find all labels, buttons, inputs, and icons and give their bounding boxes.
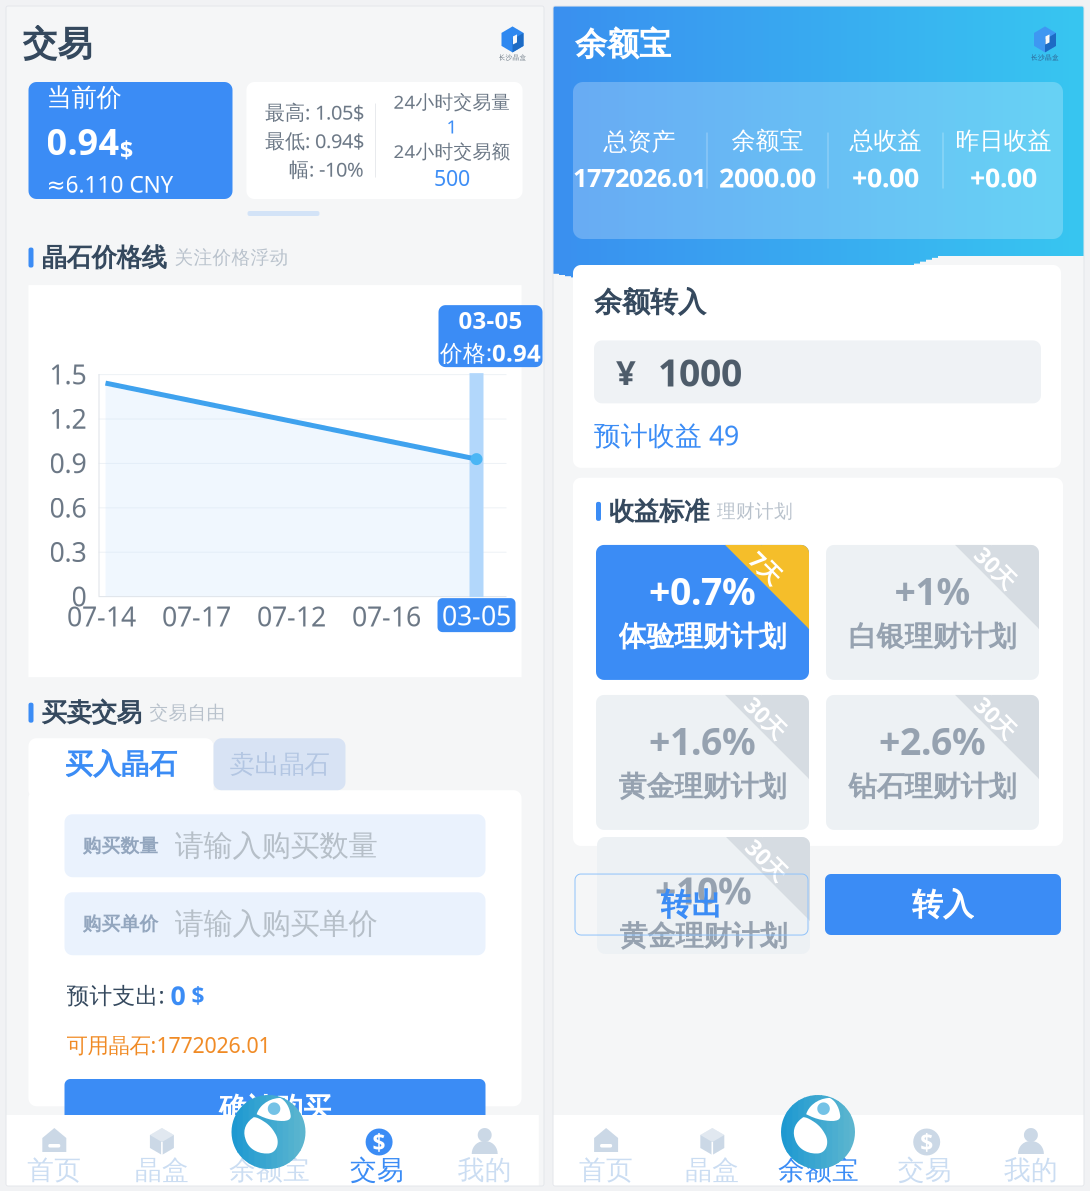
staticText: 白银理财计划 [848,619,1016,654]
staticText: 30天 [741,703,790,733]
staticText: 24小时交易量 [393,89,510,114]
button[interactable]: 余额宝 [216,1115,323,1186]
staticText: 07-17 [162,598,231,634]
staticText: 卖出晶石 [229,749,329,780]
button[interactable]: 我的 [431,1115,538,1186]
staticText: +0.00 [852,159,919,195]
button[interactable]: 我的 [978,1115,1084,1186]
staticText: 转入 [912,886,974,923]
staticText: 首页 [27,1154,81,1186]
button[interactable]: 余额宝 [781,1095,855,1169]
staticText: 长沙晶盒 [1031,53,1059,62]
staticText: 30天 [971,553,1020,583]
staticText: 首页 [579,1154,633,1186]
staticText: 最低: 0.94$ [265,127,364,154]
button[interactable]: 7天 [596,545,809,680]
button[interactable]: 晶盒 [659,1115,765,1186]
staticText: 购买单价 [82,912,158,935]
staticText: 0.94 [46,117,119,165]
button[interactable]: 30天 [826,545,1039,680]
staticText: ¥ [616,349,636,395]
staticText: 余额宝 [229,1154,310,1186]
staticText: 理财计划 [717,500,793,523]
staticText: 请输入购买单价 [174,906,377,942]
staticText: +10% [655,865,752,915]
staticText: ≈6.110 CNY [46,169,173,199]
staticText: 我的 [458,1154,512,1186]
staticText: +2.6% [879,716,986,765]
staticText: 体验理财计划 [618,619,786,654]
staticText: 30天 [742,845,791,875]
button[interactable]: 首页 [0,1115,108,1186]
staticText: 总资产 [603,127,675,156]
button[interactable]: 晶盒 [108,1115,216,1186]
staticText: 0.94 [492,337,541,368]
staticText: 交易自由 [149,701,225,724]
button[interactable]: $ [323,1115,431,1186]
staticText: 价格: [440,337,492,368]
staticText: 收益标准 [609,496,709,527]
button[interactable]: $ [872,1115,978,1186]
staticText: 买卖交易 [41,697,141,728]
staticText: 1.2 [49,401,86,436]
button[interactable]: 30天 [597,837,810,954]
staticText: 转出 [660,886,722,923]
staticText: $ [920,1127,933,1157]
staticText: 交易 [22,23,92,65]
staticText: 500 [434,163,470,192]
staticText: 0.6 [49,490,86,525]
staticText: 请输入购买数量 [174,828,377,864]
staticText: 最高: 1.05$ [265,99,364,125]
button[interactable]: 首页 [553,1115,659,1186]
staticText: 黄金理财计划 [619,919,787,953]
staticText: 1772026.01 [573,160,706,194]
staticText: 24小时交易额 [393,139,510,163]
button[interactable]: 转入 [825,874,1061,935]
staticText: 03-05 [458,304,522,336]
staticText: 余额宝 [575,24,671,64]
staticText: 2000.00 [719,159,816,195]
staticText: 晶盒 [685,1154,739,1186]
button[interactable]: 余额宝 [765,1115,872,1186]
button[interactable]: 买入晶石 [28,738,213,790]
button[interactable]: 转出 [575,874,808,935]
staticText: 当前价 [46,82,121,113]
staticText: 确认购买 [219,1091,331,1125]
staticText: $ [373,1127,386,1157]
staticText: 30天 [971,703,1020,733]
staticText: $ [119,133,133,165]
staticText: 1000 [658,347,742,397]
staticText: 预计收益 49 [594,417,739,453]
staticText: 购买数量 [82,834,158,857]
staticText: 0 [71,578,86,614]
staticText: 昨日收益 [955,126,1051,156]
button[interactable]: 确认购买 [64,1079,485,1137]
button[interactable]: 卖出晶石 [213,738,345,790]
staticText: 余额转入 [594,285,706,319]
staticText: 预计支出: [66,980,170,1010]
staticText: 07-12 [257,598,326,634]
staticText: 我的 [1004,1154,1058,1186]
staticText: 幅: -10% [289,156,364,182]
staticText: 晶盒 [135,1154,189,1186]
staticText: 7天 [748,553,784,583]
staticText: +0.7% [649,566,756,615]
staticText: 黄金理财计划 [618,769,786,804]
button[interactable]: 余额宝 [231,1095,305,1169]
button[interactable]: 30天 [826,695,1039,830]
staticText: 可用晶石:1772026.01 [66,1031,270,1059]
button[interactable]: 长沙晶盒 [495,26,529,62]
button[interactable]: 长沙晶盒 [1028,26,1062,62]
staticText: 钻石理财计划 [848,769,1016,804]
staticText: 07-16 [352,598,421,634]
staticText: 1 [446,114,457,139]
staticText: $ [185,980,204,1010]
staticText: 关注价格浮动 [174,246,288,269]
button[interactable]: 30天 [596,695,809,830]
staticText: 0 [170,977,185,1013]
staticText: 余额宝 [778,1154,859,1186]
staticText: 长沙晶盒 [498,53,526,62]
staticText: +0.00 [970,159,1037,195]
staticText: +1.6% [649,716,756,765]
staticText: 03-05 [442,597,511,633]
